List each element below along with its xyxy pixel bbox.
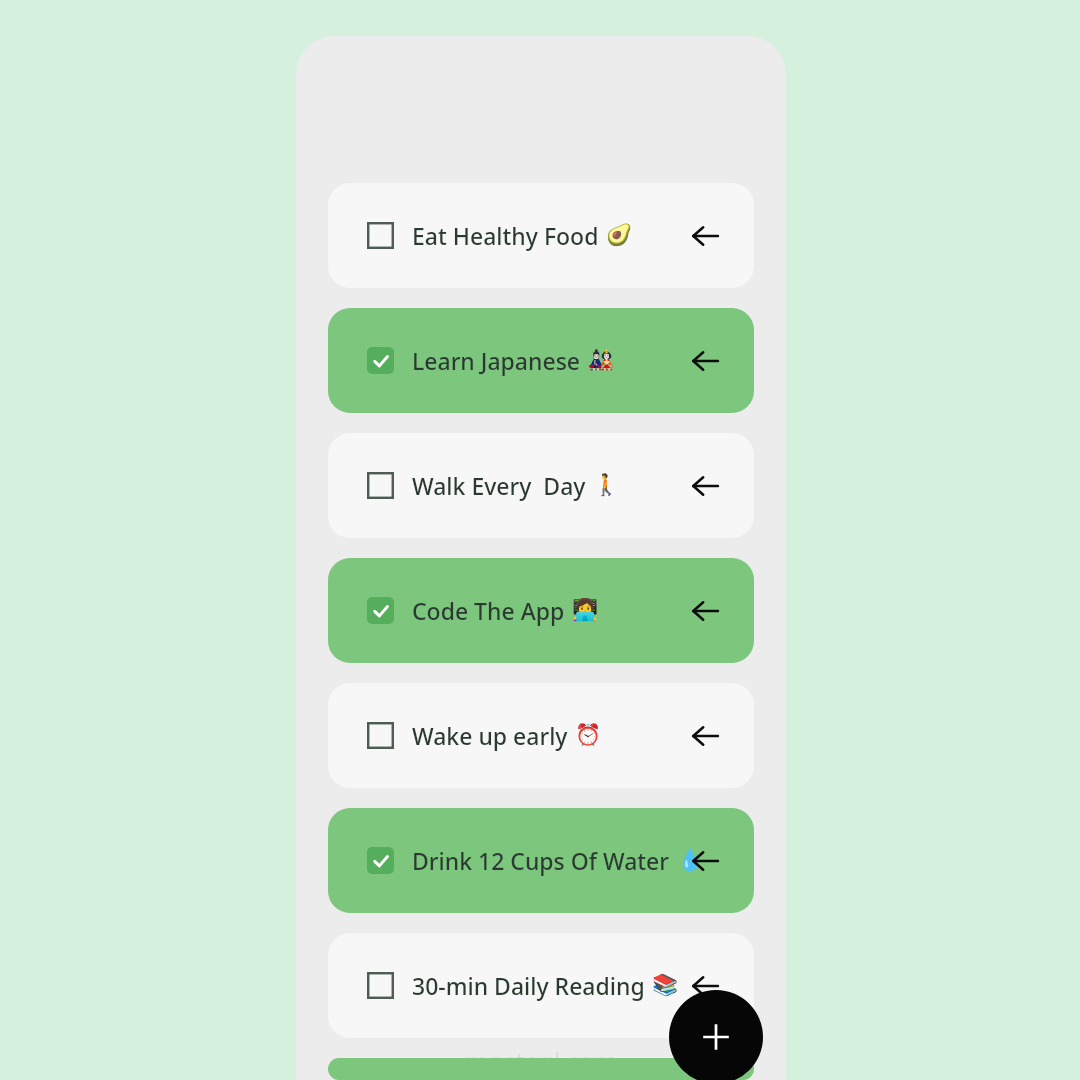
staticText: مستقل xyxy=(461,989,622,1040)
button[interactable]: Not completed xyxy=(328,683,754,788)
staticText: 📚 xyxy=(652,973,679,998)
button[interactable]: Back xyxy=(682,213,728,259)
button[interactable]: Back xyxy=(682,838,728,884)
button[interactable]: Not completed xyxy=(367,722,394,749)
button[interactable]: Not completed xyxy=(328,933,754,1038)
button[interactable]: Back xyxy=(682,588,728,634)
button[interactable]: Back xyxy=(682,963,728,1009)
staticText: ⏰ xyxy=(575,723,602,748)
button[interactable]: Back xyxy=(682,713,728,759)
staticText: Walk Every Day xyxy=(412,470,586,501)
staticText: 🎎 xyxy=(588,348,615,373)
staticText: mostaql.com xyxy=(465,1044,618,1078)
button[interactable]: Not completed xyxy=(328,433,754,538)
staticText: Eat Healthy Food xyxy=(412,220,599,251)
button[interactable]: Back xyxy=(682,463,728,509)
button[interactable]: Back xyxy=(682,338,728,384)
button[interactable]: Not completed xyxy=(367,222,394,249)
button[interactable]: Completed xyxy=(328,308,754,413)
button[interactable]: Completed xyxy=(367,847,394,874)
button[interactable]: Add new task xyxy=(669,990,763,1080)
button[interactable]: Not completed xyxy=(328,183,754,288)
staticText: Code The App xyxy=(412,595,565,626)
button[interactable] xyxy=(328,1058,754,1080)
staticText: Wake up early xyxy=(412,720,568,751)
button[interactable]: Completed xyxy=(328,808,754,913)
staticText: Drink 12 Cups Of Water xyxy=(412,845,670,876)
staticText: 🥑 xyxy=(606,223,633,248)
staticText: Learn Japanese xyxy=(412,345,581,376)
staticText: 👩‍💻 xyxy=(572,598,599,623)
button[interactable]: Not completed xyxy=(367,472,394,499)
button[interactable]: Not completed xyxy=(367,972,394,999)
staticText: 🚶 xyxy=(593,473,620,498)
staticText: 30-min Daily Reading xyxy=(412,970,645,1001)
button[interactable]: Completed xyxy=(367,347,394,374)
button[interactable]: Completed xyxy=(328,558,754,663)
button[interactable]: Completed xyxy=(367,597,394,624)
